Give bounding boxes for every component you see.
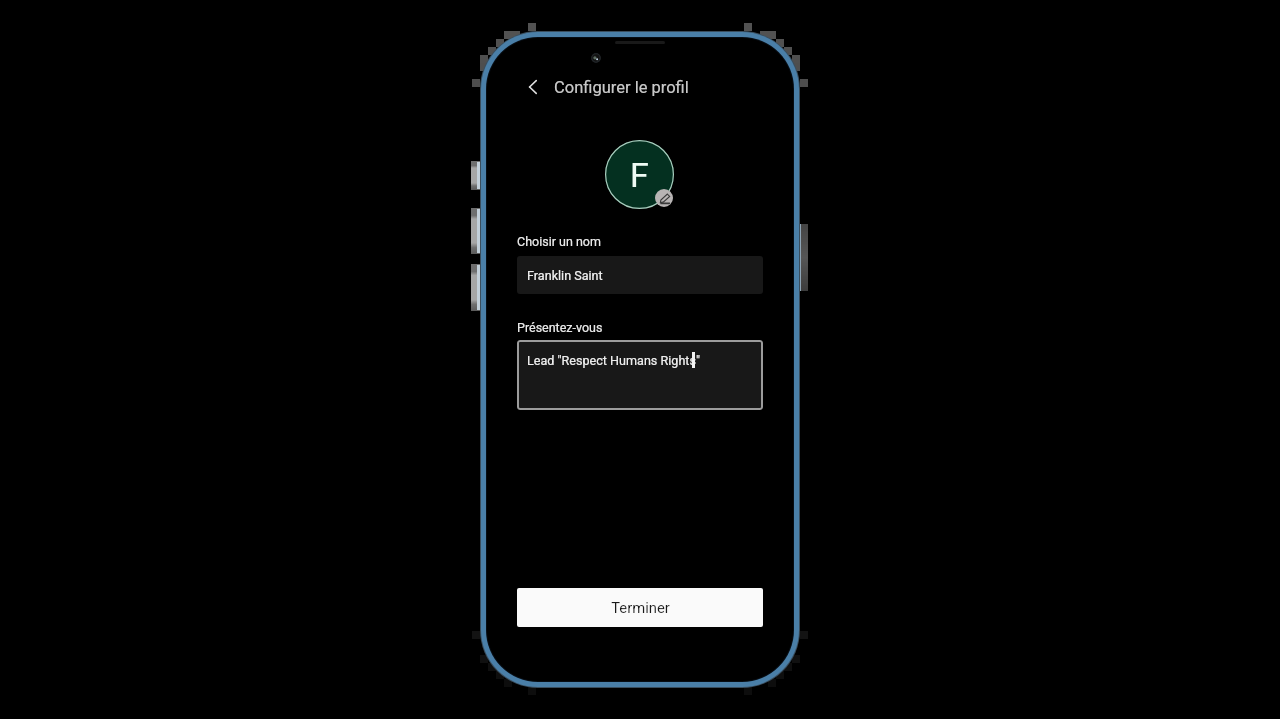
button[interactable]: Silent mode switch	[471, 161, 482, 190]
button[interactable]: Franklin Saint	[517, 256, 763, 294]
button[interactable]: Back	[520, 74, 546, 100]
staticText: Choisir un nom	[517, 234, 601, 249]
staticText: Configurer le profil	[554, 78, 689, 97]
staticText: Présentez-vous	[517, 320, 603, 335]
button[interactable]: Lead "Respect Humans Rights"	[517, 340, 763, 410]
staticText: Terminer	[611, 599, 670, 616]
button[interactable]: Profile picture	[605, 140, 674, 209]
staticText: Franklin Saint	[527, 268, 603, 283]
staticText: F	[630, 155, 649, 195]
button[interactable]: Volume down	[471, 264, 482, 311]
button[interactable]: Terminer	[517, 588, 763, 627]
button[interactable]: Power	[798, 224, 808, 291]
button[interactable]: Volume up	[471, 208, 482, 254]
staticText: Lead "Respect Humans Rights"	[527, 353, 700, 368]
button[interactable]: Edit profile picture	[655, 189, 673, 207]
